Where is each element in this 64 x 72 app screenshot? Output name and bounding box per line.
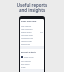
staticText: Useful reports and insights	[0, 2, 64, 13]
button[interactable]: Best sellers	[21, 62, 43, 65]
staticText: Top channels	[21, 60, 31, 62]
button[interactable]: New customers	[21, 27, 43, 30]
staticText: Sessions today	[21, 40, 33, 42]
staticText: Best sellers	[21, 63, 30, 65]
button[interactable]: Traffic	[21, 65, 43, 68]
staticText: Sales overview	[21, 20, 37, 23]
button[interactable]: Total revenue	[21, 24, 43, 27]
staticText: Conversion rate	[21, 37, 33, 39]
staticText: Traffic	[21, 66, 26, 68]
button[interactable]: Avg order value	[21, 33, 43, 36]
staticText: New customers	[21, 28, 33, 30]
staticText: Recent activity	[21, 51, 36, 54]
button[interactable]: Refund rate	[21, 42, 43, 45]
staticText: 412	[40, 31, 43, 33]
button[interactable]: Sessions today	[21, 39, 43, 42]
staticText: Refund rate	[21, 43, 30, 45]
staticText: Avg order value	[21, 34, 33, 36]
staticText: Order #1043	[24, 56, 34, 58]
button[interactable]: Order #1043	[21, 55, 43, 58]
button[interactable]: Repeat orders	[21, 30, 43, 33]
staticText: Repeat orders	[21, 31, 32, 33]
button[interactable]: Conversion rate	[21, 36, 43, 39]
button[interactable]: Top channels	[21, 59, 43, 62]
staticText: Total revenue	[21, 25, 32, 27]
